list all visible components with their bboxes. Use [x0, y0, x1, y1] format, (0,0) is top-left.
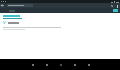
button[interactable] [3, 15, 22, 19]
button[interactable]: Recents [56, 60, 65, 69]
button[interactable]: Search [110, 4, 114, 8]
button[interactable]: More options [115, 4, 119, 8]
button[interactable] [3, 21, 117, 24]
button[interactable]: Back [0, 3, 5, 8]
button[interactable]: Screenshot [70, 60, 79, 69]
button[interactable]: Action [113, 9, 118, 12]
button[interactable] [7, 4, 33, 7]
button[interactable]: Home [42, 60, 51, 69]
button[interactable]: Back [28, 60, 37, 69]
button[interactable]: Menu [84, 60, 93, 69]
